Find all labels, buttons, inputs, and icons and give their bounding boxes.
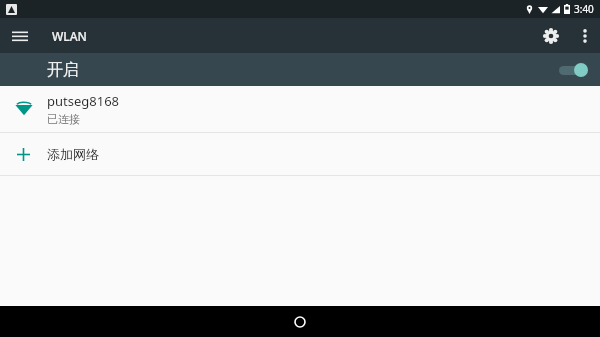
staticText: 3:40 [574, 2, 594, 16]
button[interactable]: 开启 [0, 53, 600, 86]
button[interactable]: Settings [532, 18, 570, 53]
button[interactable]: Open navigation drawer [0, 18, 40, 53]
staticText: WLAN [52, 28, 87, 44]
staticText: 已连接 [47, 112, 80, 126]
staticText: 开启 [47, 60, 79, 80]
staticText: putseg8168 [47, 92, 120, 110]
button[interactable]: 添加网络 [0, 133, 600, 175]
staticText: 添加网络 [47, 146, 99, 162]
button[interactable]: Home [287, 309, 313, 335]
button[interactable]: More options [570, 18, 600, 53]
button[interactable]: putseg8168 [0, 86, 600, 132]
